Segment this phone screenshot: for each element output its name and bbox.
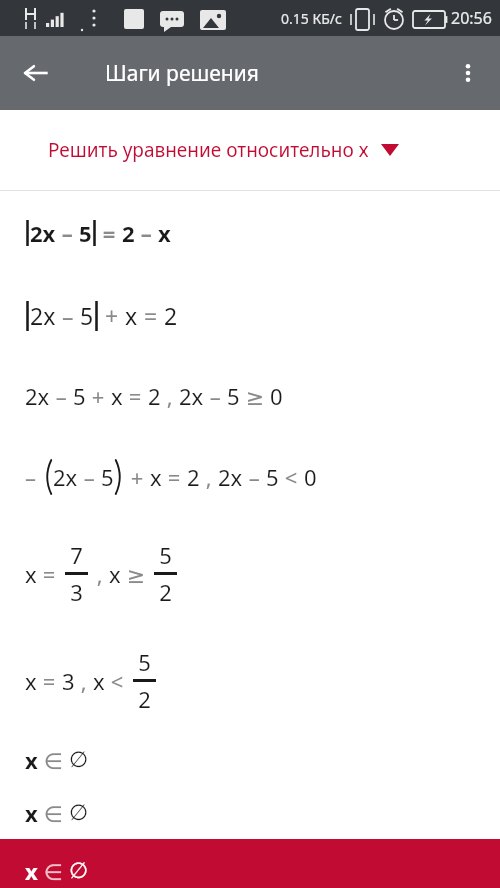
staticText: 20:56 xyxy=(451,7,492,29)
button[interactable]: x xyxy=(0,733,500,787)
button[interactable]: More options xyxy=(444,49,492,97)
staticText: = xyxy=(162,462,187,492)
staticText: ∈ xyxy=(38,798,69,828)
staticText: 0 xyxy=(270,381,283,411)
staticText: 2 xyxy=(164,300,178,331)
staticText: 2x xyxy=(30,300,56,331)
staticText: 5 xyxy=(73,381,86,411)
staticText: + xyxy=(125,462,150,492)
button[interactable]: x xyxy=(0,628,500,733)
staticText: = xyxy=(37,666,62,696)
staticText: = xyxy=(97,218,122,248)
staticText: 2x xyxy=(25,381,50,411)
staticText: 2x xyxy=(30,218,56,248)
staticText: – xyxy=(243,462,266,492)
staticText: 5 xyxy=(138,647,151,677)
button[interactable]: Решить уравнение относительно х xyxy=(0,110,500,190)
button[interactable]: Back xyxy=(12,49,60,97)
staticText: 3 xyxy=(70,577,83,607)
staticText: 5 xyxy=(101,462,114,492)
staticText: 3 xyxy=(62,666,75,696)
button[interactable]: x xyxy=(0,787,500,839)
staticText: ≥ xyxy=(240,381,270,411)
staticText: ∅ xyxy=(69,800,89,826)
button[interactable]: x xyxy=(0,518,500,628)
staticText: x xyxy=(109,559,121,589)
staticText: – xyxy=(56,218,79,248)
staticText: Решить уравнение относительно х xyxy=(48,137,369,163)
staticText: 2 xyxy=(138,684,151,714)
staticText: + xyxy=(99,300,125,331)
button[interactable]: – xyxy=(0,436,500,518)
staticText: – xyxy=(56,300,80,331)
staticText: , xyxy=(161,381,179,411)
staticText: , xyxy=(91,559,109,589)
staticText: 5 xyxy=(266,462,279,492)
staticText: x xyxy=(25,856,38,886)
staticText: x xyxy=(93,666,105,696)
staticText: 2 xyxy=(122,218,135,248)
staticText: x xyxy=(25,559,37,589)
staticText: + xyxy=(86,381,111,411)
staticText: < xyxy=(279,462,304,492)
staticText: ≥ xyxy=(121,559,151,589)
staticText: x xyxy=(158,218,171,248)
staticText: ∈ xyxy=(38,745,69,775)
staticText: x xyxy=(111,381,123,411)
staticText: 2x xyxy=(218,462,243,492)
button[interactable]: 2x xyxy=(0,274,500,356)
staticText: x xyxy=(25,745,38,775)
staticText: 0.15 КБ/с xyxy=(281,9,342,28)
staticText: 2 xyxy=(148,381,161,411)
staticText: – xyxy=(78,462,101,492)
staticText: , xyxy=(75,666,93,696)
staticText: – xyxy=(25,462,42,492)
staticText: ∈ xyxy=(38,856,69,886)
staticText: Шаги решения xyxy=(105,59,259,88)
staticText: 5 xyxy=(79,218,92,248)
button[interactable]: x xyxy=(0,839,500,888)
staticText: = xyxy=(37,559,62,589)
staticText: 2x xyxy=(53,462,78,492)
staticText: – xyxy=(135,218,158,248)
staticText: 5 xyxy=(80,300,94,331)
staticText: x xyxy=(25,798,38,828)
staticText: 7 xyxy=(70,540,83,570)
staticText: = xyxy=(123,381,148,411)
staticText: x xyxy=(25,666,37,696)
staticText: 2x xyxy=(179,381,204,411)
staticText: < xyxy=(105,666,130,696)
button[interactable]: 2x xyxy=(0,356,500,436)
staticText: – xyxy=(50,381,73,411)
staticText: 0 xyxy=(304,462,317,492)
staticText: ∅ xyxy=(69,747,89,773)
staticText: – xyxy=(204,381,227,411)
staticText: , xyxy=(200,462,218,492)
staticText: 2 xyxy=(187,462,200,492)
staticText: x xyxy=(150,462,162,492)
staticText: x xyxy=(125,300,138,331)
staticText: 2 xyxy=(159,577,172,607)
button[interactable]: 2x xyxy=(0,191,500,274)
staticText: 5 xyxy=(227,381,240,411)
staticText: 5 xyxy=(159,540,172,570)
staticText: ∅ xyxy=(69,858,89,884)
staticText: = xyxy=(138,300,164,331)
